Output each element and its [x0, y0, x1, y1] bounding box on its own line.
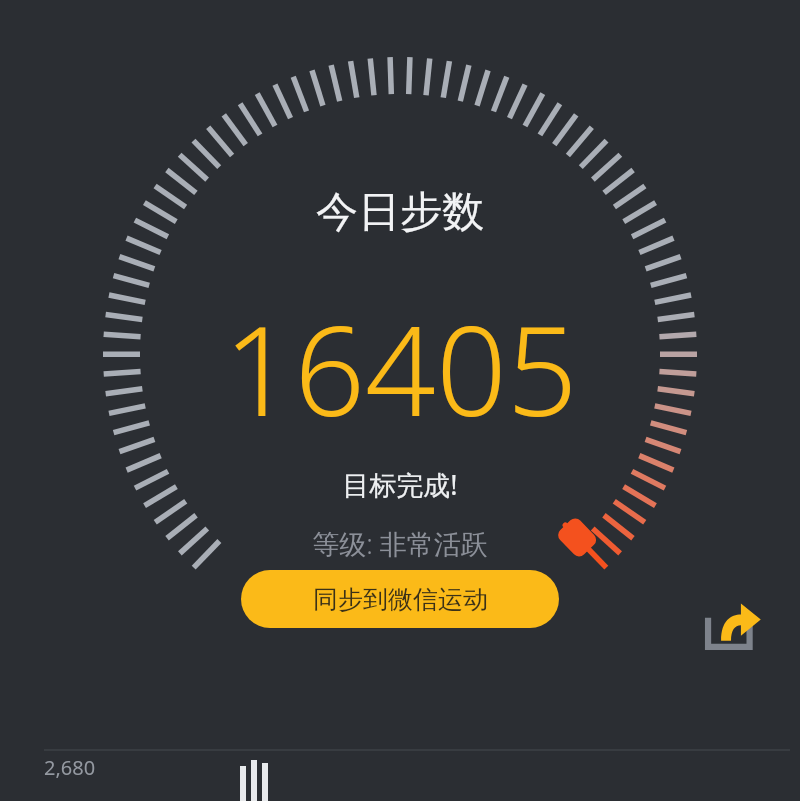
- button[interactable]: Share: [700, 596, 762, 658]
- button[interactable]: 同步到微信运动: [241, 570, 559, 628]
- staticText: 目标完成!: [342, 466, 458, 503]
- staticText: 2,680: [44, 754, 96, 781]
- staticText: 今日步数: [316, 186, 484, 239]
- staticText: 同步到微信运动: [313, 584, 488, 615]
- staticText: 16405: [223, 283, 578, 452]
- staticText: 等级: 非常活跃: [312, 525, 488, 562]
